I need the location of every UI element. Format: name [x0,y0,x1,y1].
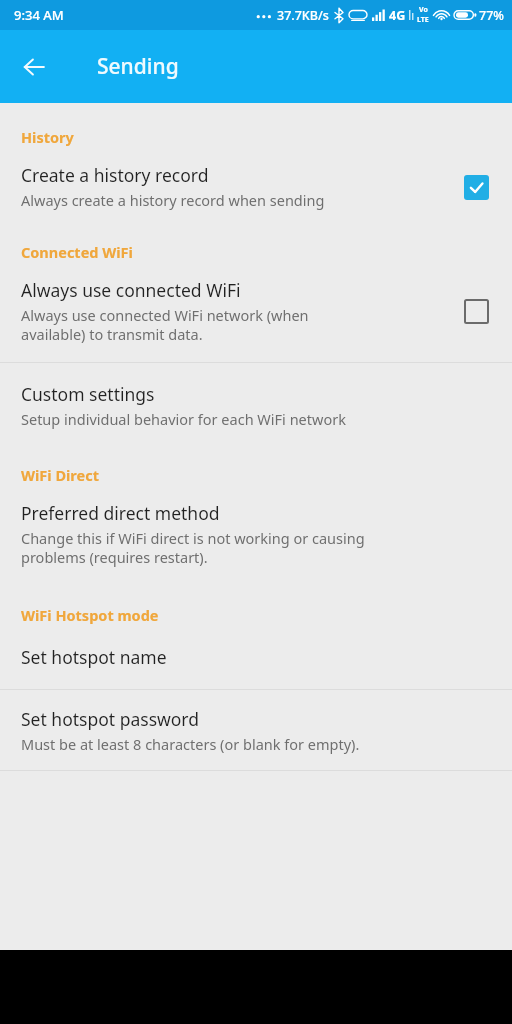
button[interactable]: Unchecked [456,291,496,331]
staticText: 4G [389,7,406,24]
button[interactable]: Set hotspot password [0,690,512,770]
staticText: 37.7KB/s [277,7,329,24]
staticText: 9:34 AM [14,6,64,24]
staticText: Preferred direct method [21,501,220,525]
staticText: Create a history record [21,163,209,187]
staticText: LTE [417,15,429,25]
staticText: Always use connected WiFi network (when … [21,305,309,344]
staticText: Change this if WiFi direct is not workin… [21,528,365,567]
staticText: Sending [97,52,179,81]
button[interactable]: Custom settings [0,363,512,445]
button[interactable]: Set hotspot name [0,625,512,689]
staticText: Always create a history record when send… [21,190,325,210]
staticText: Vo [419,5,428,15]
button[interactable]: Always use connected WiFi [0,262,512,362]
button[interactable]: Preferred direct method [0,485,512,583]
staticText: 77% [479,7,504,24]
staticText: Setup individual behavior for each WiFi … [21,409,346,429]
staticText: WiFi Hotspot mode [21,605,159,625]
staticText: WiFi Direct [21,465,99,485]
staticText: Custom settings [21,382,155,406]
staticText: Set hotspot password [21,707,199,731]
staticText: Set hotspot name [21,645,167,669]
button[interactable]: Checked [456,167,496,207]
button[interactable]: Back [10,43,58,91]
staticText: Always use connected WiFi [21,278,241,302]
button[interactable]: Create a history record [0,147,512,224]
staticText: Must be at least 8 characters (or blank … [21,734,360,754]
staticText: History [21,127,74,147]
staticText: Connected WiFi [21,242,133,262]
